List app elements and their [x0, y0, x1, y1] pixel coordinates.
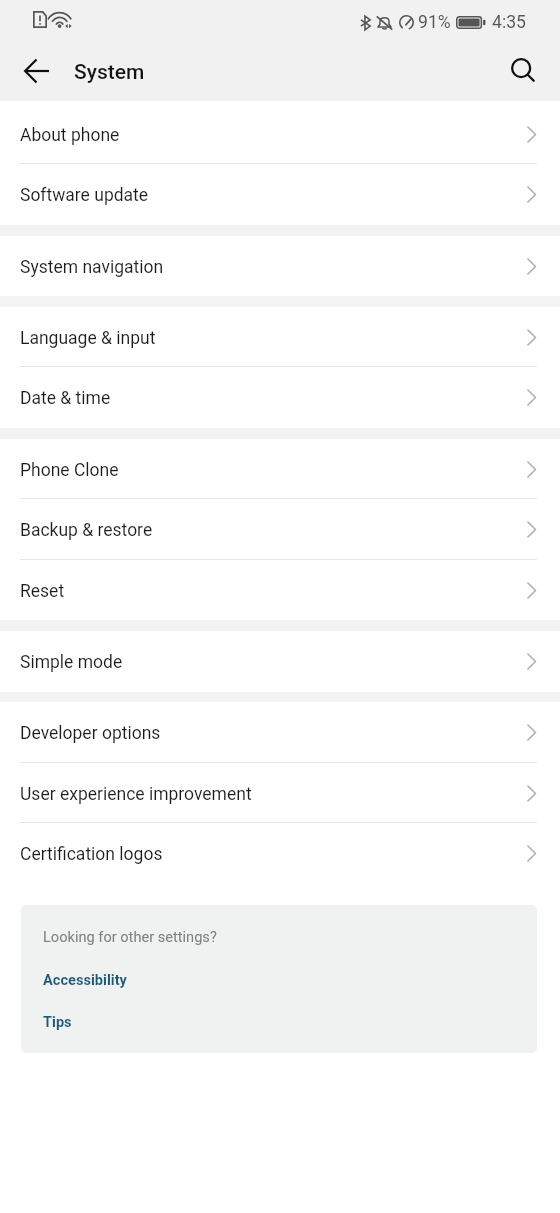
button[interactable]: User experience improvement	[0, 763, 560, 823]
button[interactable]: Reset	[0, 560, 560, 620]
button[interactable]: Search	[499, 48, 547, 96]
staticText: Certification logos	[20, 844, 163, 865]
button[interactable]: Tips	[21, 1005, 537, 1035]
staticText: Date & time	[20, 388, 111, 409]
staticText: 4:35	[492, 12, 526, 33]
button[interactable]: Accessibility	[21, 963, 537, 993]
staticText: Software update	[20, 185, 149, 206]
staticText: Simple mode	[20, 652, 123, 673]
button[interactable]: Developer options	[0, 702, 560, 763]
staticText: User experience improvement	[20, 784, 252, 805]
button[interactable]: Back	[12, 48, 61, 97]
button[interactable]: Date & time	[0, 367, 560, 428]
button[interactable]: Phone Clone	[0, 439, 560, 499]
staticText: About phone	[20, 125, 120, 146]
button[interactable]: Simple mode	[0, 631, 560, 692]
button[interactable]: Language & input	[0, 307, 560, 367]
staticText: 91%	[418, 12, 451, 33]
button[interactable]: System navigation	[0, 236, 560, 296]
staticText: System	[74, 60, 145, 85]
staticText: Tips	[43, 1013, 72, 1030]
staticText: Phone Clone	[20, 460, 119, 481]
staticText: Language & input	[20, 328, 156, 349]
button[interactable]: Software update	[0, 164, 560, 225]
staticText: System navigation	[20, 257, 164, 278]
button[interactable]: Backup & restore	[0, 499, 560, 560]
staticText: Reset	[20, 581, 65, 602]
button[interactable]: About phone	[0, 104, 560, 164]
button[interactable]: Certification logos	[0, 823, 560, 884]
staticText: Accessibility	[43, 971, 127, 988]
staticText: Developer options	[20, 723, 161, 744]
staticText: Backup & restore	[20, 520, 153, 541]
staticText: Looking for other settings?	[43, 928, 217, 945]
